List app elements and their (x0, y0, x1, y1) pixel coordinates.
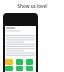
button[interactable]: Subscribe (26, 66, 33, 71)
staticText: Show us love! (17, 3, 48, 9)
button[interactable]: Show us love! (0, 0, 64, 12)
button[interactable]: Review (5, 66, 13, 71)
button[interactable]: Donate (16, 66, 23, 71)
button[interactable]: Rate (5, 59, 13, 65)
button[interactable]: Follow (26, 59, 33, 65)
button[interactable]: Share (16, 59, 23, 65)
